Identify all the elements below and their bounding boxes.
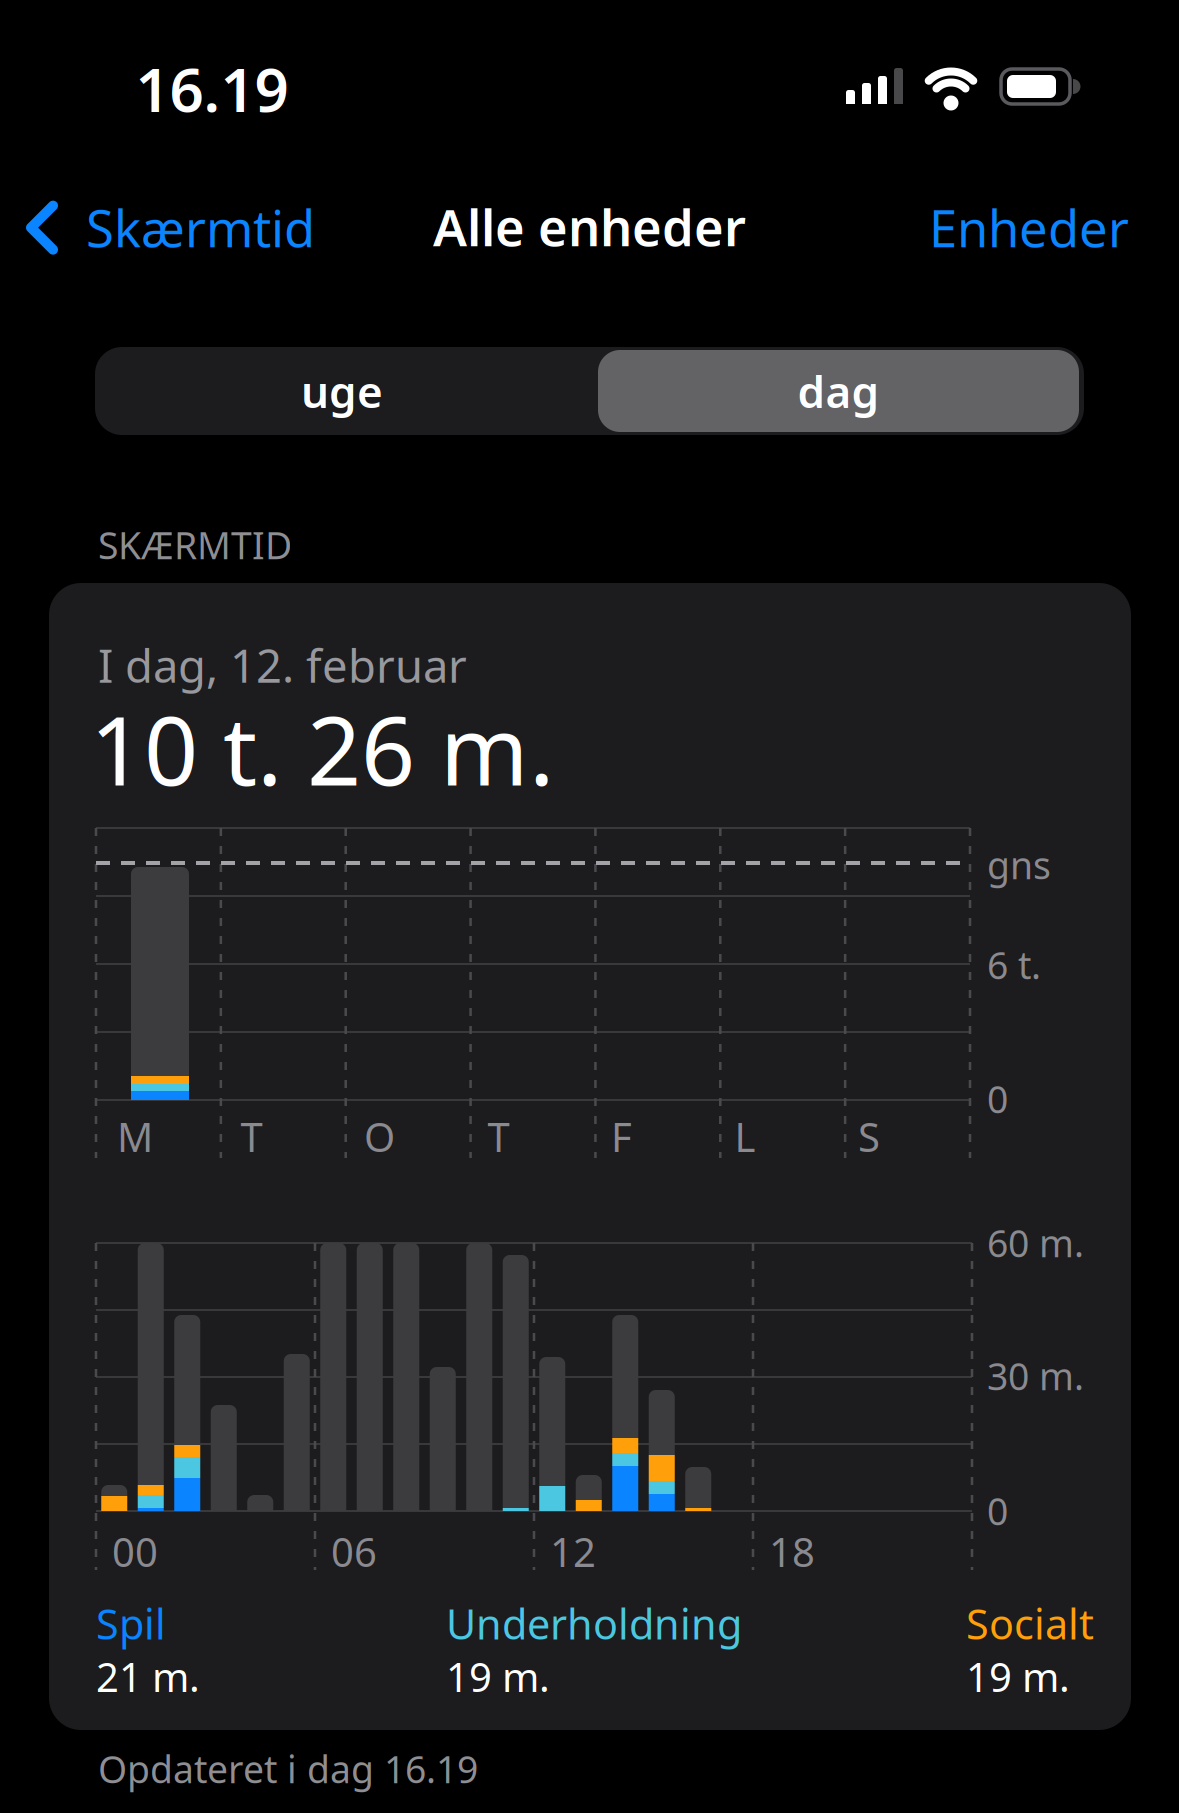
staticText: Skærmtid [86,194,315,261]
button[interactable]: uge [95,347,589,435]
staticText: Opdateret i dag 16.19 [98,1744,478,1794]
staticText: 6 t. [987,940,1041,990]
staticText: 19 m. [446,1650,550,1703]
staticText: F [611,1110,632,1163]
staticText: 19 m. [966,1650,1070,1703]
staticText: 16.19 [135,49,288,129]
staticText: 60 m. [987,1218,1084,1268]
button[interactable]: Skærmtid [28,194,315,261]
staticText: T [487,1110,509,1163]
staticText: Enheder [929,194,1129,261]
staticText: O [364,1110,395,1163]
staticText: dag [797,362,879,420]
staticText: Spil [96,1596,166,1651]
staticText: 10 t. 26 m. [90,686,554,812]
staticText: Underholdning [446,1596,742,1651]
staticText: 0 [987,1486,1008,1536]
staticText: gns [987,840,1051,890]
staticText: S [858,1110,880,1163]
button[interactable]: Enheder [929,194,1129,261]
staticText: SKÆRMTID [98,520,292,570]
staticText: T [240,1110,262,1163]
button[interactable]: dag [598,350,1079,432]
staticText: Alle enheder [433,193,746,260]
staticText: L [734,1110,755,1163]
staticText: 30 m. [987,1351,1084,1401]
staticText: uge [301,362,383,420]
staticText: 12 [550,1525,596,1578]
staticText: I dag, 12. februar [98,635,467,695]
staticText: 0 [987,1074,1008,1124]
staticText: Socialt [966,1596,1094,1651]
staticText: M [117,1110,153,1163]
staticText: 21 m. [96,1650,200,1703]
staticText: 00 [112,1525,158,1578]
staticText: 06 [331,1525,377,1578]
staticText: 18 [769,1525,815,1578]
